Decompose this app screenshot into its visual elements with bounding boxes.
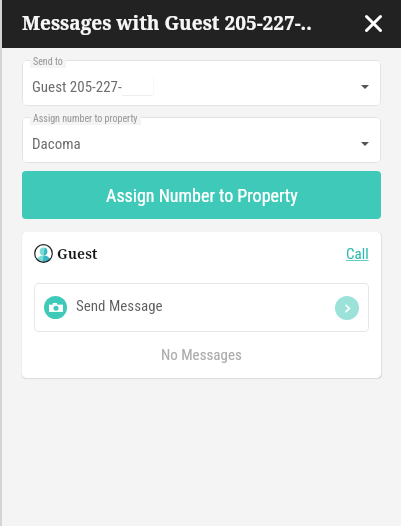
staticText: Messages with Guest 205-227-.. — [22, 10, 312, 36]
button[interactable]: Send Message — [34, 283, 369, 332]
button[interactable]: Close — [361, 11, 385, 35]
staticText: Guest — [57, 244, 98, 263]
staticText: Assign number to property — [33, 113, 138, 125]
staticText: No Messages — [161, 346, 242, 364]
staticText: Call — [346, 245, 369, 263]
staticText: Send to — [33, 56, 63, 68]
button[interactable]: Assign Number to Property — [22, 171, 381, 219]
staticText: Send Message — [76, 297, 163, 315]
staticText: Assign Number to Property — [106, 185, 298, 206]
staticText: Guest 205-227-4 — [32, 78, 130, 96]
staticText: Dacoma — [32, 135, 81, 153]
button[interactable]: Call — [346, 245, 369, 263]
